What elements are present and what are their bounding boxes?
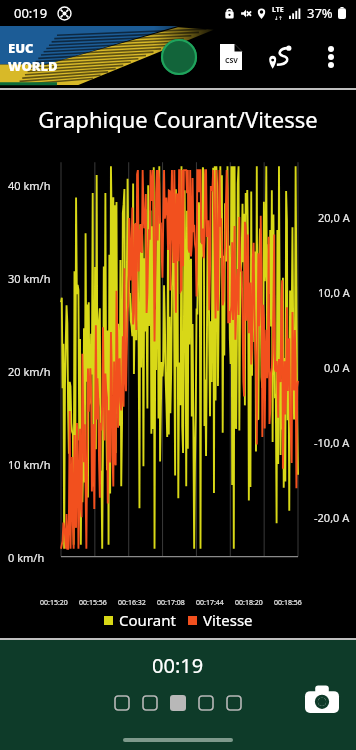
staticText: 00:15:20	[40, 598, 68, 608]
staticText: Courant	[119, 610, 176, 630]
staticText: WORLD	[8, 57, 58, 75]
staticText: -10,0 A	[314, 435, 350, 450]
button[interactable]: Page 5	[225, 694, 243, 712]
staticText: 00:18:56	[274, 598, 302, 608]
staticText: 00:17:08	[157, 598, 185, 608]
staticText: 00:17:44	[196, 598, 224, 608]
staticText: CSV	[225, 56, 238, 66]
staticText: 20,0 A	[318, 210, 350, 225]
staticText: 40 km/h	[8, 178, 51, 193]
staticText: Vitesse	[203, 610, 253, 630]
button[interactable]: Export CSV	[214, 40, 248, 74]
staticText: 10 km/h	[8, 457, 51, 472]
staticText: 30 km/h	[8, 271, 51, 286]
staticText: Graphique Courant/Vitesse	[0, 104, 356, 134]
button[interactable]: Screenshot	[302, 679, 342, 719]
staticText: EUC	[8, 39, 34, 57]
staticText: 00:18:20	[235, 598, 263, 608]
button[interactable]: More options	[314, 40, 348, 74]
staticText: 00:19	[14, 4, 48, 22]
staticText: 20 km/h	[8, 364, 51, 379]
staticText: 00:16:32	[118, 598, 146, 608]
staticText: ↓↑	[274, 15, 283, 21]
staticText: 0 km/h	[8, 550, 45, 565]
staticText: 37%	[307, 4, 333, 22]
button[interactable]: Page 2	[141, 694, 159, 712]
staticText: LTE	[272, 5, 284, 15]
staticText: -20,0 A	[314, 510, 350, 525]
button[interactable]: Connection status	[160, 38, 198, 76]
staticText: 00:19	[152, 652, 204, 679]
staticText: 10,0 A	[318, 285, 350, 300]
staticText: 00:15:56	[79, 598, 107, 608]
button[interactable]: Route	[264, 40, 298, 74]
button[interactable]: Page 3	[169, 694, 187, 712]
button[interactable]: Page 1	[113, 694, 131, 712]
button[interactable]: Page 4	[197, 694, 215, 712]
staticText: 0,0 A	[324, 360, 350, 375]
